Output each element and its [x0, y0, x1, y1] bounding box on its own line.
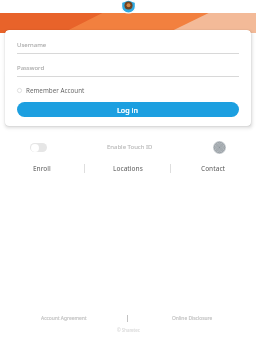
staticText: Enroll: [33, 164, 51, 173]
button[interactable]: Enroll: [0, 160, 84, 176]
button[interactable]: Password: [17, 64, 239, 77]
button[interactable]: Enable Touch ID: [30, 143, 47, 152]
button[interactable]: Username: [17, 41, 239, 54]
staticText: © Sharetec: [117, 327, 140, 333]
staticText: Contact: [201, 164, 226, 173]
staticText: Locations: [113, 164, 143, 173]
button[interactable]: Log in: [17, 102, 239, 117]
button[interactable]: Locations: [85, 160, 170, 176]
button[interactable]: Account Agreement: [40, 314, 88, 323]
button[interactable]: Touch ID: [212, 140, 226, 154]
staticText: Password: [17, 64, 45, 72]
staticText: Username: [17, 41, 47, 49]
button[interactable]: Online Disclosure: [171, 314, 214, 323]
staticText: Log in: [117, 105, 139, 115]
button[interactable]: Contact: [171, 160, 256, 176]
button[interactable]: Remember Account: [17, 84, 85, 96]
staticText: Remember Account: [26, 86, 85, 95]
staticText: Enable Touch ID: [107, 143, 153, 151]
